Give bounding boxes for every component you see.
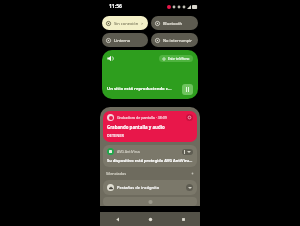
button[interactable]: No interrumpir: [151, 33, 198, 47]
button[interactable]: Expand: [186, 114, 193, 121]
staticText: Linterna: [114, 38, 131, 43]
staticText: Este teléfono: [168, 56, 190, 61]
button[interactable]: Silenciadas: [103, 169, 197, 178]
button[interactable]: Sin conexión: [102, 16, 148, 30]
staticText: >: [141, 21, 144, 26]
button[interactable]: Grabadora de pantalla · 38:09: [103, 111, 197, 142]
button[interactable]: Expand notification: [182, 149, 193, 155]
button[interactable]: Volume: [102, 50, 198, 99]
button[interactable]: Expand: [186, 184, 193, 191]
staticText: Su dispositivo está protegido AVG AntiVi…: [107, 158, 193, 163]
staticText: Un sitio está reproduciendo contenid…: [107, 86, 173, 92]
button[interactable]: Linterna: [102, 33, 148, 47]
staticText: Silenciadas: [106, 171, 127, 176]
button[interactable]: Este teléfono: [159, 55, 193, 62]
button[interactable]: AVG AntiVirus: [103, 145, 197, 167]
staticText: AVG AntiVirus: [117, 149, 182, 154]
button[interactable]: Pause: [182, 84, 193, 95]
button[interactable]: Back: [100, 212, 134, 226]
staticText: Sin conexión: [114, 21, 139, 26]
staticText: 11:56: [109, 3, 122, 10]
staticText: Grabando pantalla y audio: [107, 124, 165, 130]
staticText: No interrumpir: [163, 38, 192, 43]
staticText: Pestañas de incógnito: [117, 185, 186, 190]
button[interactable]: Recent apps: [167, 212, 200, 226]
button[interactable]: Bluetooth: [151, 16, 198, 30]
other: Volume: [107, 55, 114, 62]
button[interactable]: DETENER: [107, 133, 124, 138]
button[interactable]: [103, 197, 197, 206]
staticText: Grabadora de pantalla · 38:09: [117, 115, 186, 120]
button[interactable]: Home: [134, 212, 167, 226]
staticText: DETENER: [107, 133, 124, 138]
staticText: Bluetooth: [163, 21, 182, 26]
button[interactable]: Pestañas de incógnito: [103, 180, 197, 195]
other: More options: [191, 172, 194, 175]
